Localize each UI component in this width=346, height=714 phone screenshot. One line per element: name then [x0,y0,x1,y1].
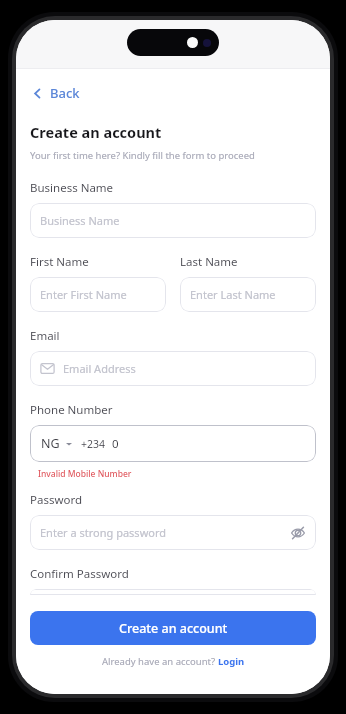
button[interactable]: Enter First Name [30,277,166,312]
staticText: Enter a strong password [40,525,167,540]
staticText: Already have an account? [102,655,218,668]
button[interactable]: Enter a strong password [30,515,316,550]
staticText: Confirm Password [30,566,129,582]
button[interactable]: Enter Last Name [180,277,316,312]
staticText: Back [50,84,80,102]
staticText: Last Name [180,254,238,270]
button[interactable]: Create an account [30,611,316,645]
staticText: Create an account [119,620,228,637]
button[interactable]: NG [30,425,316,462]
button[interactable]: Business Name [30,203,316,238]
staticText: Email Address [63,361,136,376]
staticText: Enter First Name [40,287,127,302]
button[interactable]: Email Address [30,351,316,386]
staticText: Email [30,328,60,344]
other: Toggle password visibility [290,525,306,541]
button[interactable] [30,589,316,595]
staticText: Phone Number [30,402,113,418]
staticText: Create an account [30,122,162,142]
button[interactable]: Back [30,81,82,105]
staticText: Business Name [40,213,120,228]
staticText: Invalid Mobile Number [38,468,132,480]
staticText: Business Name [30,180,114,196]
staticText: First Name [30,254,89,270]
staticText: NG [41,435,60,452]
staticText: Password [30,492,83,508]
staticText: Your first time here? Kindly fill the fo… [30,149,255,162]
staticText: 0 [112,436,119,452]
staticText: Enter Last Name [190,287,276,302]
staticText: Login [218,655,245,668]
button[interactable]: Already have an account? [30,655,316,668]
staticText: +234 [81,437,106,451]
